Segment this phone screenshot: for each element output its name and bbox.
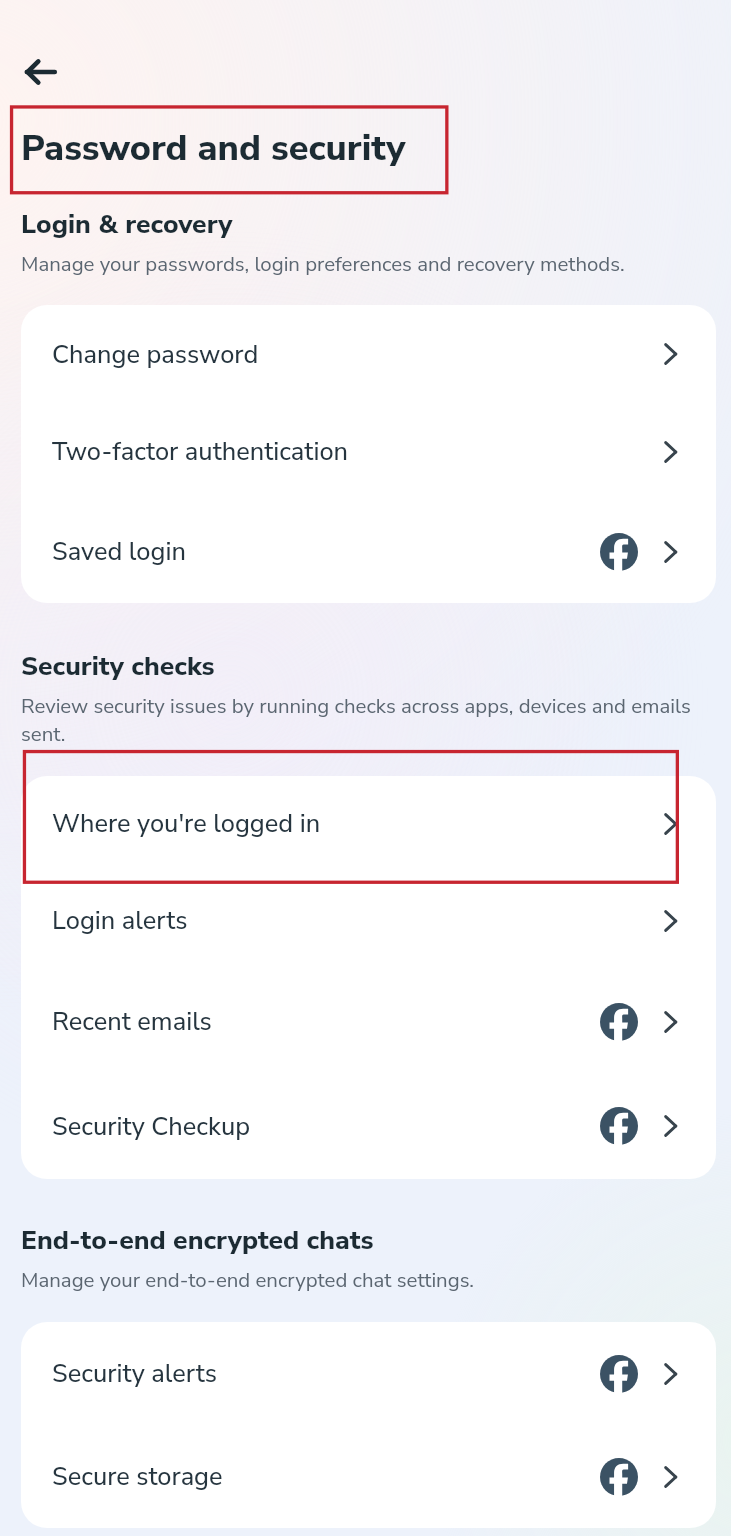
staticText: Review security issues by running checks… — [21, 692, 721, 749]
staticText: Manage your end-to-end encrypted chat se… — [21, 1266, 474, 1294]
staticText: Recent emails — [52, 1004, 600, 1039]
staticText: End-to-end encrypted chats — [21, 1222, 374, 1258]
button[interactable]: Security alerts — [21, 1322, 716, 1425]
staticText: Manage your passwords, login preferences… — [21, 250, 625, 278]
staticText: Login alerts — [52, 903, 659, 938]
staticText: Security alerts — [52, 1356, 600, 1391]
staticText: Login & recovery — [21, 206, 233, 242]
button[interactable]: Two-factor authentication — [21, 403, 716, 500]
staticText: Where you're logged in — [52, 806, 659, 841]
staticText: Saved login — [52, 534, 600, 569]
button[interactable]: Secure storage — [21, 1425, 716, 1528]
button[interactable]: Saved login — [21, 500, 716, 603]
staticText: Two-factor authentication — [52, 434, 659, 469]
button[interactable]: Login alerts — [21, 871, 716, 970]
button[interactable]: Recent emails — [21, 970, 716, 1073]
staticText: Secure storage — [52, 1459, 600, 1494]
staticText: Password and security — [21, 124, 406, 173]
staticText: Security checks — [21, 648, 215, 684]
button[interactable]: Change password — [21, 305, 716, 403]
staticText: Change password — [52, 337, 659, 372]
button[interactable]: Security Checkup — [21, 1073, 716, 1179]
button[interactable]: Where you're logged in — [21, 776, 716, 871]
staticText: Security Checkup — [52, 1109, 600, 1144]
button[interactable]: Back — [12, 50, 68, 106]
